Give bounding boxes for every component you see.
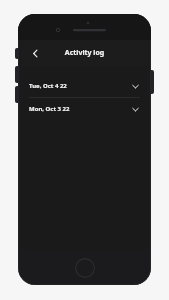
staticText: Tue, Oct 4 22 xyxy=(29,82,67,90)
button[interactable]: Back xyxy=(26,44,44,62)
staticText: Activity log xyxy=(22,48,147,58)
staticText: Mon, Oct 3 22 xyxy=(29,105,70,113)
button[interactable]: Mon, Oct 3 22 xyxy=(22,98,147,120)
button[interactable]: Home xyxy=(75,258,95,278)
button[interactable]: Tue, Oct 4 22 xyxy=(22,75,147,97)
